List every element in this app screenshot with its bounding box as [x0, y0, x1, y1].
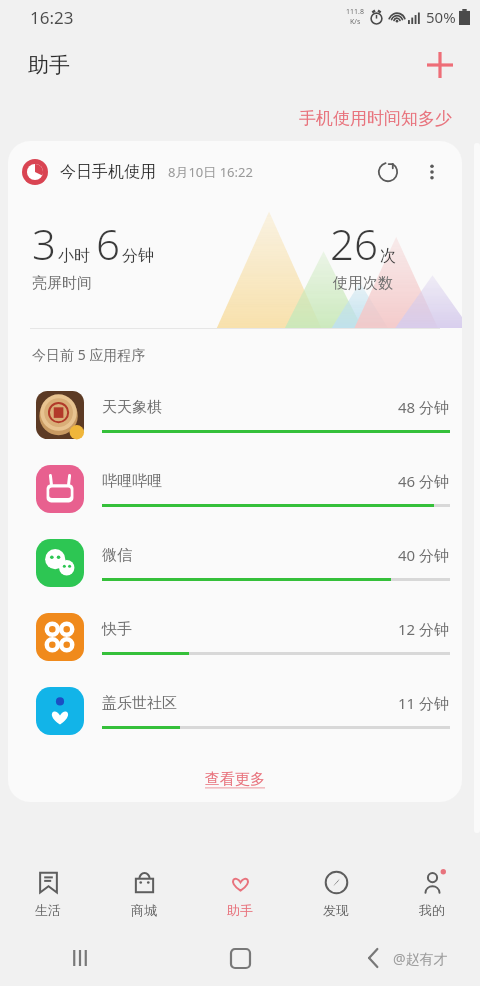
staticText: 查看更多 [205, 770, 265, 789]
button[interactable]: 发现 [288, 854, 384, 930]
button[interactable]: Back [353, 938, 393, 978]
button[interactable]: 查看更多 [8, 760, 462, 798]
staticText: 6 [96, 215, 120, 272]
button[interactable]: Home [217, 935, 263, 981]
staticText: 天天象棋 [102, 398, 162, 417]
staticText: 我的 [419, 902, 445, 918]
staticText: 8月10日 16:22 [168, 163, 253, 181]
staticText: 助手 [28, 52, 70, 78]
staticText: 40 分钟 [398, 545, 450, 565]
button[interactable]: Recents [57, 935, 103, 981]
button[interactable]: 盖乐世社区 [8, 674, 462, 748]
staticText: K/s [350, 17, 361, 27]
button[interactable]: 助手 [192, 854, 288, 930]
staticText: 16:23 [30, 6, 74, 29]
staticText: 助手 [227, 902, 253, 918]
staticText: 生活 [35, 902, 61, 918]
staticText: 盖乐世社区 [102, 694, 177, 713]
staticText: 48 分钟 [398, 397, 450, 417]
staticText: 使用次数 [333, 274, 393, 293]
staticText: 快手 [102, 620, 132, 639]
button[interactable]: 天天象棋 [8, 378, 462, 452]
staticText: @赵有才 [393, 949, 448, 968]
staticText: 哔哩哔哩 [102, 472, 162, 491]
staticText: 今日手机使用 [60, 162, 156, 182]
staticText: 26 [330, 215, 378, 272]
staticText: 今日前 5 应用程序 [32, 345, 146, 364]
staticText: 46 分钟 [398, 471, 450, 491]
button[interactable]: More options [410, 150, 454, 194]
staticText: 发现 [323, 902, 349, 918]
staticText: 亮屏时间 [32, 274, 92, 293]
button[interactable]: 生活 [0, 854, 96, 930]
button[interactable]: 商城 [96, 854, 192, 930]
staticText: 次 [380, 246, 396, 266]
button[interactable]: 我的 [384, 854, 480, 930]
staticText: 商城 [131, 902, 157, 918]
button[interactable]: 快手 [8, 600, 462, 674]
button[interactable]: Add [416, 41, 464, 89]
staticText: 11 分钟 [398, 693, 450, 713]
staticText: 12 分钟 [398, 619, 450, 639]
button[interactable]: 哔哩哔哩 [8, 452, 462, 526]
staticText: 小时 [58, 246, 90, 266]
staticText: 50% [426, 7, 456, 27]
staticText: 手机使用时间知多少 [299, 108, 452, 129]
staticText: 111.8 [346, 7, 364, 17]
staticText: 微信 [102, 546, 132, 565]
button[interactable]: 微信 [8, 526, 462, 600]
staticText: 3 [32, 215, 56, 272]
button[interactable]: Refresh [366, 150, 410, 194]
staticText: 分钟 [122, 246, 154, 266]
